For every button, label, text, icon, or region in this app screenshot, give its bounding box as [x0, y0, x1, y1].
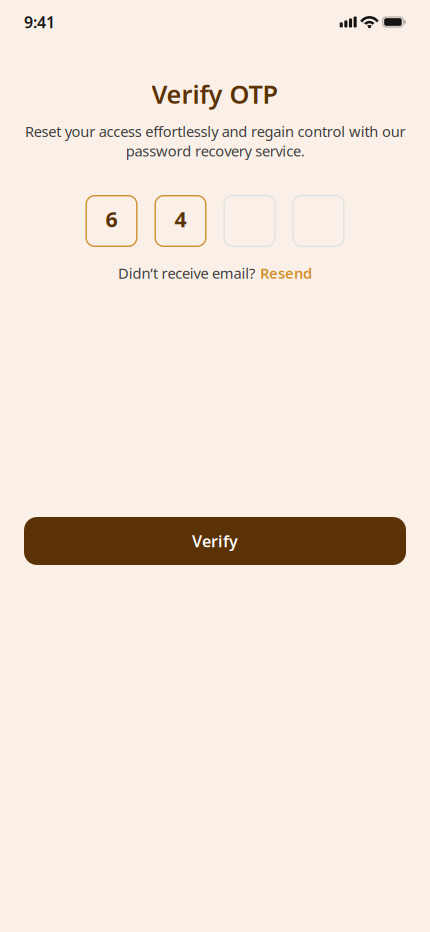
staticText: Didn’t receive email? [118, 263, 255, 283]
button[interactable]: OTP digit 4 [154, 195, 206, 247]
staticText: 9:41 [24, 11, 55, 33]
button[interactable]: Verify [24, 517, 406, 565]
staticText: 4 [174, 205, 186, 233]
staticText: Verify [192, 530, 238, 552]
button[interactable]: Empty OTP digit [292, 195, 344, 247]
staticText: Resend [260, 263, 312, 283]
button[interactable]: Resend [260, 263, 312, 283]
staticText: 6 [105, 205, 117, 233]
button[interactable]: OTP digit 6 [85, 195, 137, 247]
staticText: Verify OTP [151, 77, 278, 111]
staticText: Reset your access effortlessly and regai… [25, 121, 405, 160]
button[interactable]: Empty OTP digit [223, 195, 275, 247]
